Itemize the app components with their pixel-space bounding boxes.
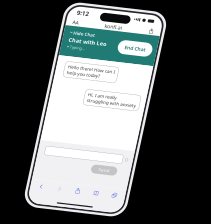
staticText: AA <box>109 73 135 100</box>
staticText: Hide Chat <box>122 119 211 144</box>
button[interactable]: Hide Chat <box>109 119 211 144</box>
staticText: Chat with Leo <box>109 148 211 178</box>
staticText: Typing... <box>120 182 183 203</box>
button[interactable]: Page settings <box>105 73 139 99</box>
staticText: 9:12 <box>119 27 168 61</box>
